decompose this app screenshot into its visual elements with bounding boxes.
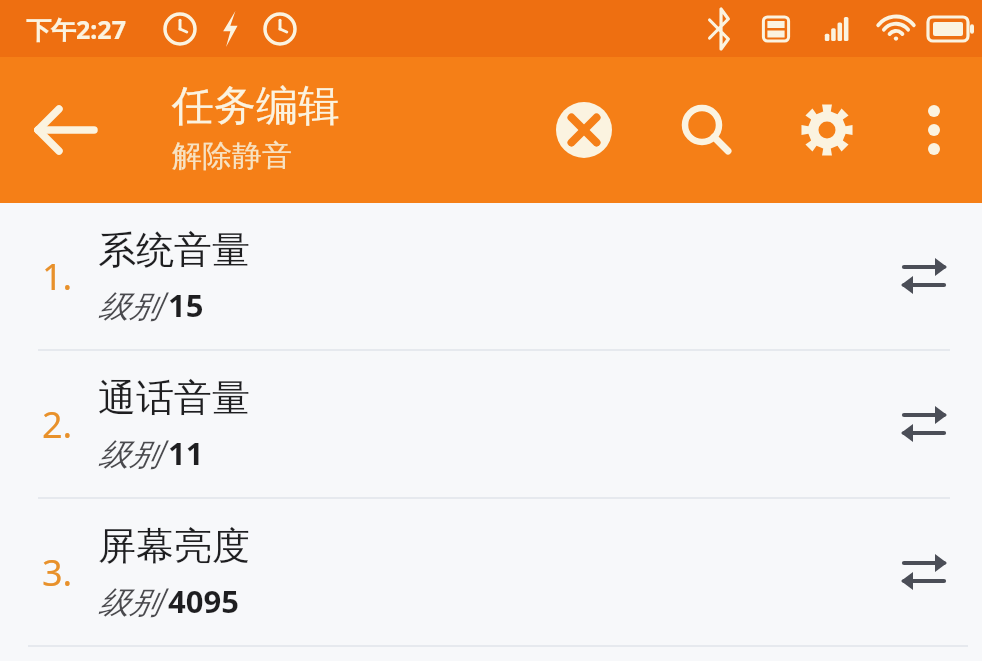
button[interactable]: Reorder	[892, 540, 956, 604]
staticText: 任务编辑	[172, 80, 340, 133]
staticText: 通话音量	[98, 374, 250, 422]
staticText: 级别 4095	[98, 580, 239, 622]
button[interactable]: Reorder	[892, 392, 956, 456]
button[interactable]: Back	[30, 94, 102, 166]
staticText: 3.	[42, 548, 98, 597]
button[interactable]: 1.	[0, 203, 982, 349]
staticText: 2.	[42, 400, 98, 449]
staticText: 下午2:27	[26, 12, 126, 46]
button[interactable]: More options	[900, 96, 968, 164]
staticText: 解除静音	[172, 137, 292, 175]
staticText: 系统音量	[98, 226, 250, 274]
staticText: 级别 15	[98, 284, 204, 326]
button[interactable]: Close	[548, 94, 620, 166]
button[interactable]: Reorder	[892, 244, 956, 308]
staticText: 1.	[42, 252, 98, 301]
staticText: 级别 11	[98, 432, 204, 474]
button[interactable]: Search	[670, 94, 742, 166]
button[interactable]: Settings	[791, 94, 863, 166]
button[interactable]: 2.	[0, 351, 982, 497]
button[interactable]: 3.	[0, 499, 982, 645]
staticText: 屏幕亮度	[98, 522, 250, 570]
